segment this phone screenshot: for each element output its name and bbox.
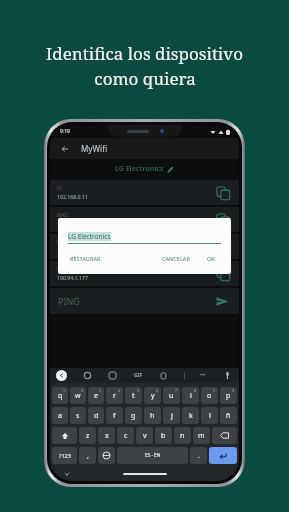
button[interactable]: w (70, 387, 86, 404)
staticText: ••• (200, 372, 206, 379)
button[interactable]: CANCELAR (160, 253, 192, 264)
button[interactable]: Copy (214, 238, 232, 256)
staticText: 5 (137, 388, 140, 393)
button[interactable]: Send ping (213, 292, 231, 310)
button[interactable]: g (125, 407, 142, 424)
button[interactable]: z (79, 427, 96, 444)
staticText: i (190, 391, 192, 401)
staticText: . (198, 451, 200, 461)
button[interactable]: More options (199, 371, 207, 380)
staticText: MyWifi (81, 143, 108, 154)
staticText: q (58, 391, 63, 401)
button[interactable]: Collapse toolbar (56, 370, 67, 381)
staticText: Identifica los dispositivo (46, 42, 243, 65)
button[interactable]: j (163, 407, 180, 424)
staticText: 4 (118, 388, 121, 393)
button[interactable]: d (88, 407, 104, 424)
button[interactable]: r (106, 387, 123, 404)
staticText: f (113, 411, 116, 421)
button[interactable]: k (182, 407, 199, 424)
staticText: 192.168.0.11 (57, 193, 88, 200)
staticText: 7 (175, 388, 178, 393)
staticText: x (105, 431, 109, 441)
staticText: ES · EN (145, 452, 161, 459)
button[interactable]: Stickers (107, 370, 118, 381)
button[interactable]: MAC: (50, 207, 239, 232)
button[interactable]: m (193, 427, 210, 444)
button[interactable]: n (174, 427, 191, 444)
staticText: t (132, 391, 135, 401)
button[interactable]: u (163, 387, 180, 404)
staticText: c (124, 431, 128, 441)
button[interactable]: Copy (214, 265, 232, 283)
button[interactable]: e (88, 387, 104, 404)
button[interactable]: Back (57, 141, 72, 156)
staticText: IP: (57, 185, 63, 192)
button[interactable]: y (144, 387, 161, 404)
button[interactable]: v (136, 427, 153, 444)
button[interactable]: Change language (98, 447, 115, 464)
button[interactable]: i (182, 387, 199, 404)
staticText: como quiera (94, 67, 196, 90)
staticText: 190.94.1.177 (57, 274, 88, 281)
button[interactable]: t (125, 387, 142, 404)
button[interactable]: Copy (214, 211, 232, 229)
staticText: k (189, 411, 193, 421)
staticText: GIF (134, 372, 143, 379)
button[interactable]: x (98, 427, 115, 444)
staticText: 8 (194, 388, 197, 393)
button[interactable]: Themes (82, 370, 93, 381)
staticText: j (171, 411, 173, 421)
button[interactable]: f (106, 407, 123, 424)
button[interactable]: Enter (209, 447, 237, 464)
button[interactable]: Backspace (212, 427, 237, 444)
button[interactable]: q (52, 387, 68, 404)
button[interactable]: OK (205, 253, 217, 264)
staticText: 190.94.1.178 (57, 247, 88, 254)
button[interactable]: DNS2: (50, 261, 239, 286)
button[interactable]: ñ (220, 407, 237, 424)
staticText: p (226, 391, 231, 401)
button[interactable]: PING (50, 288, 239, 314)
button[interactable]: p (220, 387, 237, 404)
button[interactable]: b (155, 427, 172, 444)
staticText: b (161, 431, 166, 441)
button[interactable]: ES · EN (117, 447, 188, 464)
button[interactable]: s (70, 407, 86, 424)
button[interactable]: Voice input (222, 370, 233, 381)
staticText: u (169, 391, 174, 401)
button[interactable]: Clipboard (158, 370, 169, 381)
staticText: 9 (213, 388, 216, 393)
button[interactable]: . (190, 447, 207, 464)
button[interactable]: , (79, 447, 96, 464)
button[interactable]: Hide keyboard (62, 469, 72, 479)
staticText: 9:19 (60, 128, 70, 135)
staticText: RESTAURAR (70, 255, 101, 262)
staticText: z (86, 431, 90, 441)
button[interactable]: IP: (50, 180, 239, 205)
staticText: DNS2: (57, 266, 71, 273)
staticText: LG Electronics (115, 164, 164, 174)
button[interactable]: o (201, 387, 218, 404)
button[interactable]: DNS1: (50, 234, 239, 259)
button[interactable]: l (201, 407, 218, 424)
staticText: LG Electronics (68, 232, 111, 241)
staticText: v (143, 431, 147, 441)
button[interactable]: Shift (52, 427, 77, 444)
staticText: 6 (156, 388, 159, 393)
staticText: y (151, 391, 155, 401)
button[interactable]: a (52, 407, 68, 424)
button[interactable]: LG Electronics (68, 232, 221, 244)
button[interactable]: Copy (214, 184, 232, 202)
other: Edit name (167, 166, 174, 173)
staticText: ñ (226, 411, 231, 421)
button[interactable]: ?123 (52, 447, 77, 464)
button[interactable]: RESTAURAR (68, 253, 103, 264)
button[interactable]: h (144, 407, 161, 424)
staticText: l (209, 411, 211, 421)
staticText: MAC: (57, 212, 69, 219)
button[interactable]: LG Electronics (112, 161, 177, 177)
button[interactable]: GIF (133, 371, 144, 380)
button[interactable]: c (117, 427, 134, 444)
staticText: r (113, 391, 116, 401)
